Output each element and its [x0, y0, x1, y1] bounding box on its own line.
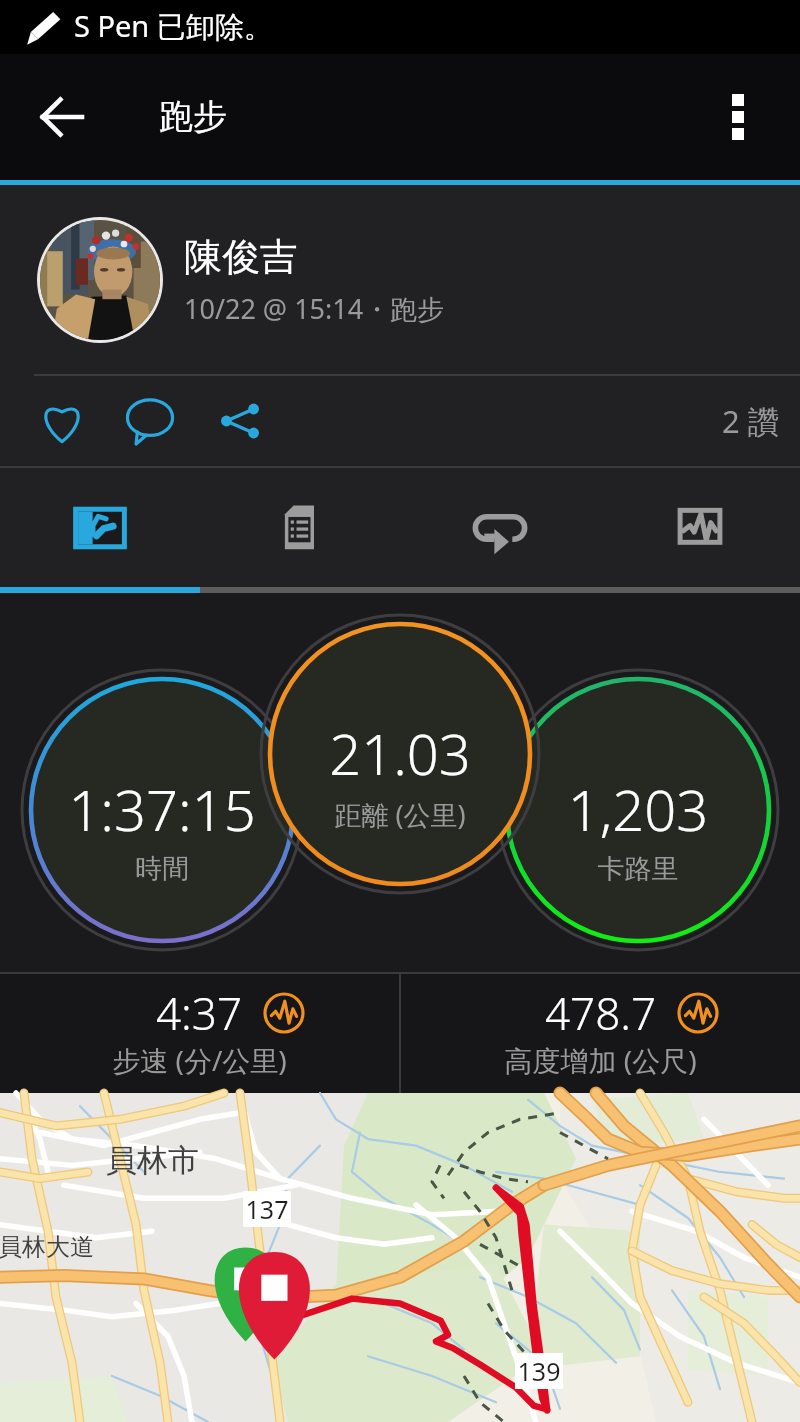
button[interactable]: 4:37 — [0, 972, 399, 1093]
staticText: 員林大道 — [0, 1232, 94, 1262]
button[interactable]: 478.7 — [401, 972, 800, 1093]
staticText: S Pen 已卸除。 — [74, 6, 273, 46]
staticText: 10/22 @ 15:14・跑步 — [184, 290, 445, 327]
button[interactable]: Route map — [0, 1093, 800, 1422]
staticText: 高度增加 (公尺) — [401, 1041, 800, 1079]
staticText: 陳俊吉 — [184, 233, 298, 281]
staticText: 4:37 — [156, 983, 243, 1043]
button[interactable]: More options — [690, 69, 786, 165]
staticText: 1,203 — [518, 771, 758, 847]
staticText: 時間 — [42, 852, 282, 886]
staticText: 478.7 — [545, 983, 657, 1043]
staticText: 21.03 — [280, 715, 520, 791]
staticText: 137 — [243, 1192, 291, 1226]
staticText: 139 — [515, 1354, 563, 1388]
button[interactable]: Share — [206, 387, 274, 455]
staticText: 1:37:15 — [42, 771, 282, 847]
button[interactable]: Back — [14, 69, 110, 165]
button[interactable]: Comment — [116, 387, 184, 455]
button[interactable]: Details — [200, 468, 400, 587]
button[interactable]: Laps — [400, 468, 600, 587]
staticText: 距離 (公里) — [280, 796, 520, 833]
staticText: 跑步 — [159, 95, 227, 138]
staticText: 卡路里 — [518, 852, 758, 886]
button[interactable]: Like — [28, 387, 96, 455]
staticText: 步速 (分/公里) — [0, 1041, 399, 1079]
button[interactable]: 陳俊吉 — [0, 185, 800, 374]
staticText: 員林市 — [106, 1141, 199, 1180]
button[interactable]: Map — [0, 468, 200, 587]
staticText: 2 讚 — [722, 400, 779, 442]
button[interactable]: Charts — [600, 468, 800, 587]
